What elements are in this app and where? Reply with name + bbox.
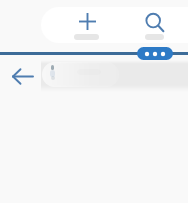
button[interactable]: Back	[9, 64, 37, 89]
button[interactable]: More options	[137, 47, 173, 60]
button[interactable]: Add	[73, 12, 102, 41]
button[interactable]	[42, 62, 119, 87]
button[interactable]: Search	[144, 12, 168, 41]
